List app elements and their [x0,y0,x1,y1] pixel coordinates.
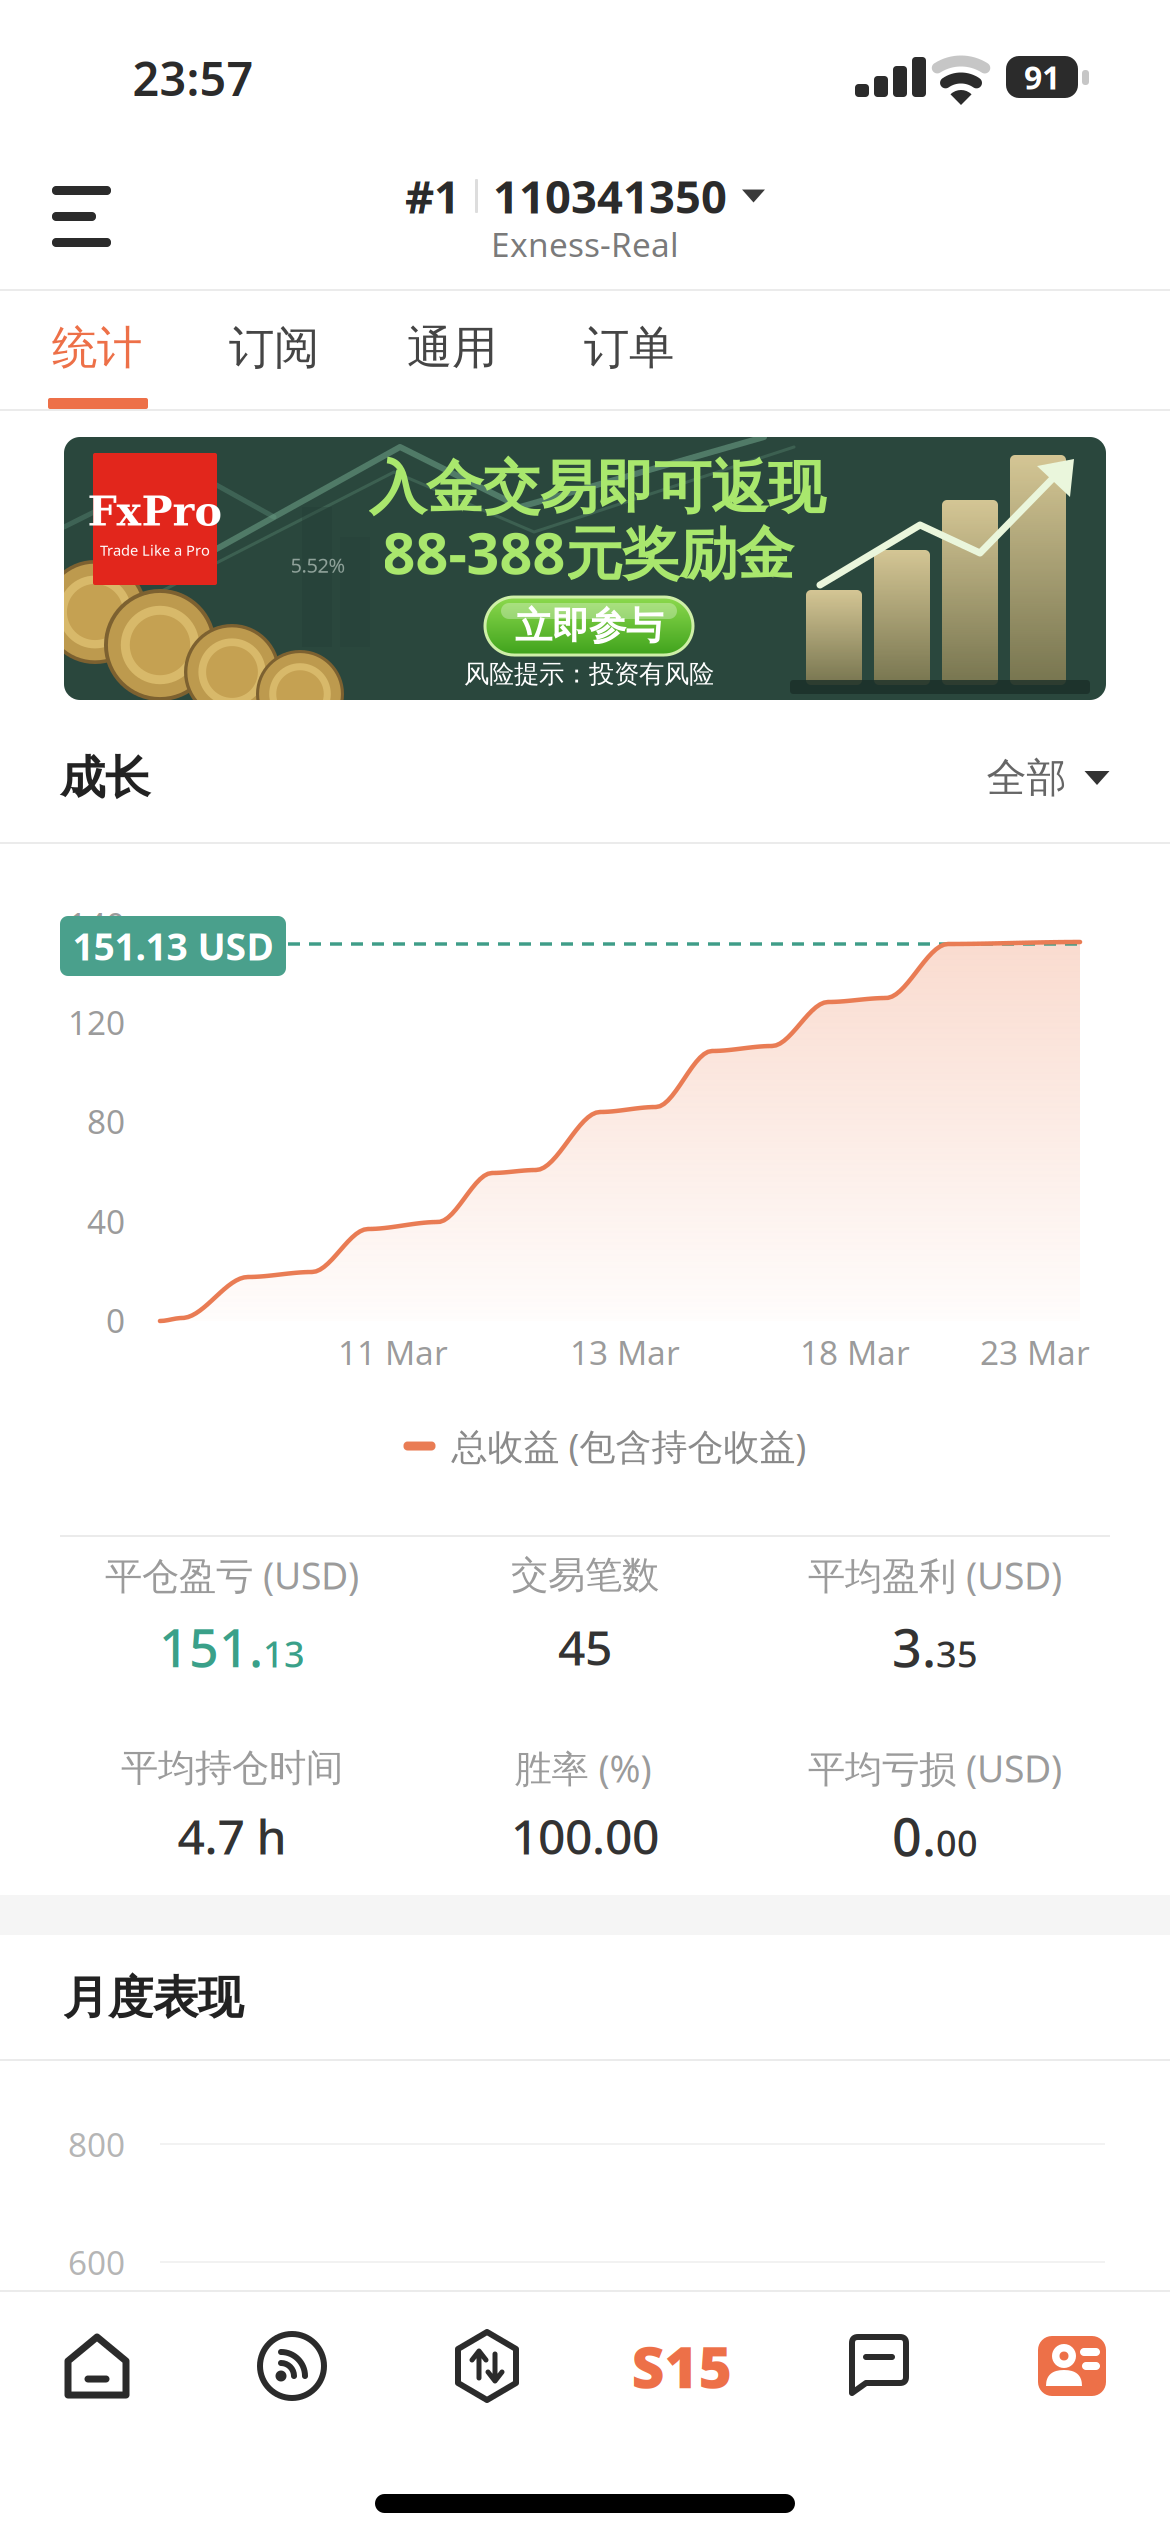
staticText: 151.13 USD [72,921,273,971]
staticText: 0 [106,1298,125,1342]
staticText: 全部 [986,753,1066,802]
button[interactable]: Trade [0,0,1170,2532]
button[interactable]: Menu [0,0,1170,2532]
staticText: 平均持仓时间 [121,1745,343,1791]
staticText: 订单 [584,320,674,376]
staticText: 成长 [60,750,150,806]
staticText: 18 Mar [800,1330,910,1374]
staticText: Trade Like a Pro [100,540,210,560]
staticText: 23 Mar [980,1330,1090,1374]
button[interactable]: FxPro promotion banner [0,0,1170,2532]
staticText: 4.7 h [177,1804,286,1868]
button[interactable]: #1 [0,0,1170,2532]
staticText: 600 [68,2240,125,2284]
staticText: 统计 [52,320,142,376]
staticText: 45 [558,1615,612,1679]
staticText: 13 Mar [570,1330,680,1374]
staticText: 00 [936,1819,978,1866]
button[interactable]: 通用 [0,0,1170,2532]
button[interactable]: 立即参与 [64,437,1106,700]
button[interactable]: Feed [0,0,1170,2532]
staticText: 100.00 [511,1804,659,1868]
staticText: 风险提示：投资有风险 [464,658,714,689]
staticText: 5.52% [290,552,345,578]
staticText: 订阅 [229,320,319,376]
staticText: 11 Mar [338,1330,448,1374]
staticText: 80 [87,1099,125,1143]
button[interactable]: 统计 [0,0,1170,2532]
staticText: 120 [68,1000,125,1044]
button[interactable]: 订单 [0,0,1170,2532]
staticText: S15 [631,2328,732,2404]
staticText: 总收益 (包含持仓收益) [451,1422,806,1470]
staticText: 13 [263,1630,305,1677]
staticText: 23:57 [132,47,253,109]
staticText: 800 [68,2122,125,2166]
staticText: 通用 [407,320,497,376]
staticText: 91 [1024,56,1060,98]
button[interactable]: 订阅 [0,0,1170,2532]
staticText: #1 [405,166,460,226]
staticText: 110341350 [493,166,727,226]
staticText: 151. [159,1612,263,1682]
staticText: 平均亏损 (USD) [808,1743,1062,1793]
button[interactable]: 全部 [0,0,1170,2532]
staticText: 40 [87,1199,125,1243]
staticText: 平均盈利 (USD) [808,1550,1062,1600]
staticText: 胜率 (%) [514,1743,651,1793]
staticText: 入金交易即可返现 [369,453,825,523]
staticText: 交易笔数 [511,1552,659,1598]
staticText: 0. [892,1801,936,1871]
staticText: 88-388元奖励金 [382,514,793,590]
staticText: FxPro [87,487,222,535]
button[interactable]: Messages [0,0,1170,2532]
staticText: 平仓盈亏 (USD) [105,1550,359,1600]
staticText: 立即参与 [515,603,663,649]
staticText: 140 [68,902,125,946]
staticText: 35 [936,1630,978,1677]
staticText: 3. [892,1612,936,1682]
button[interactable]: S15 [0,0,1170,2532]
button[interactable]: Home [0,0,1170,2532]
staticText: 月度表现 [63,1970,243,2026]
button[interactable]: Profile [0,0,1170,2532]
staticText: Exness-Real [491,222,679,266]
